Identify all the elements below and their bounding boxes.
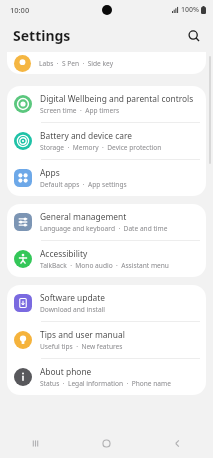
button[interactable]: Accessibility — [7, 241, 206, 277]
staticText: Accessibility — [40, 248, 88, 259]
button[interactable]: Home — [71, 428, 142, 458]
button[interactable]: Recents — [0, 428, 71, 458]
staticText: Software update — [40, 292, 106, 303]
staticText: Battery and device care — [40, 130, 132, 141]
staticText: Download and install — [40, 305, 106, 314]
staticText: Status · Legal information · Phone name — [40, 379, 171, 388]
staticText: Digital Wellbeing and parental controls — [40, 93, 194, 104]
staticText: About phone — [40, 366, 92, 377]
button[interactable]: Search — [183, 25, 205, 47]
button[interactable]: Digital Wellbeing and parental controls — [7, 86, 206, 122]
staticText: Labs · S Pen · Side key — [39, 59, 114, 68]
staticText: Screen time · App timers — [40, 106, 120, 115]
button[interactable]: Software update — [7, 285, 206, 321]
staticText: Apps — [40, 167, 60, 178]
button[interactable]: Apps — [7, 160, 206, 196]
staticText: 100% — [181, 5, 199, 15]
staticText: Language and keyboard · Date and time — [40, 224, 168, 233]
staticText: Storage · Memory · Device protection — [40, 143, 162, 152]
button[interactable]: About phone — [7, 359, 206, 395]
button[interactable]: Tips and user manual — [7, 322, 206, 358]
staticText: General management — [40, 211, 127, 222]
button[interactable]: Labs · S Pen · Side key — [7, 52, 206, 74]
button[interactable]: Back — [142, 428, 213, 458]
staticText: TalkBack · Mono audio · Assistant menu — [40, 261, 169, 270]
staticText: Useful tips · New features — [40, 342, 123, 351]
staticText: Tips and user manual — [40, 329, 125, 340]
button[interactable]: General management — [7, 204, 206, 240]
button[interactable]: Battery and device care — [7, 123, 206, 159]
staticText: Settings — [13, 26, 71, 45]
staticText: 10:00 — [10, 5, 30, 15]
staticText: Default apps · App settings — [40, 180, 127, 189]
